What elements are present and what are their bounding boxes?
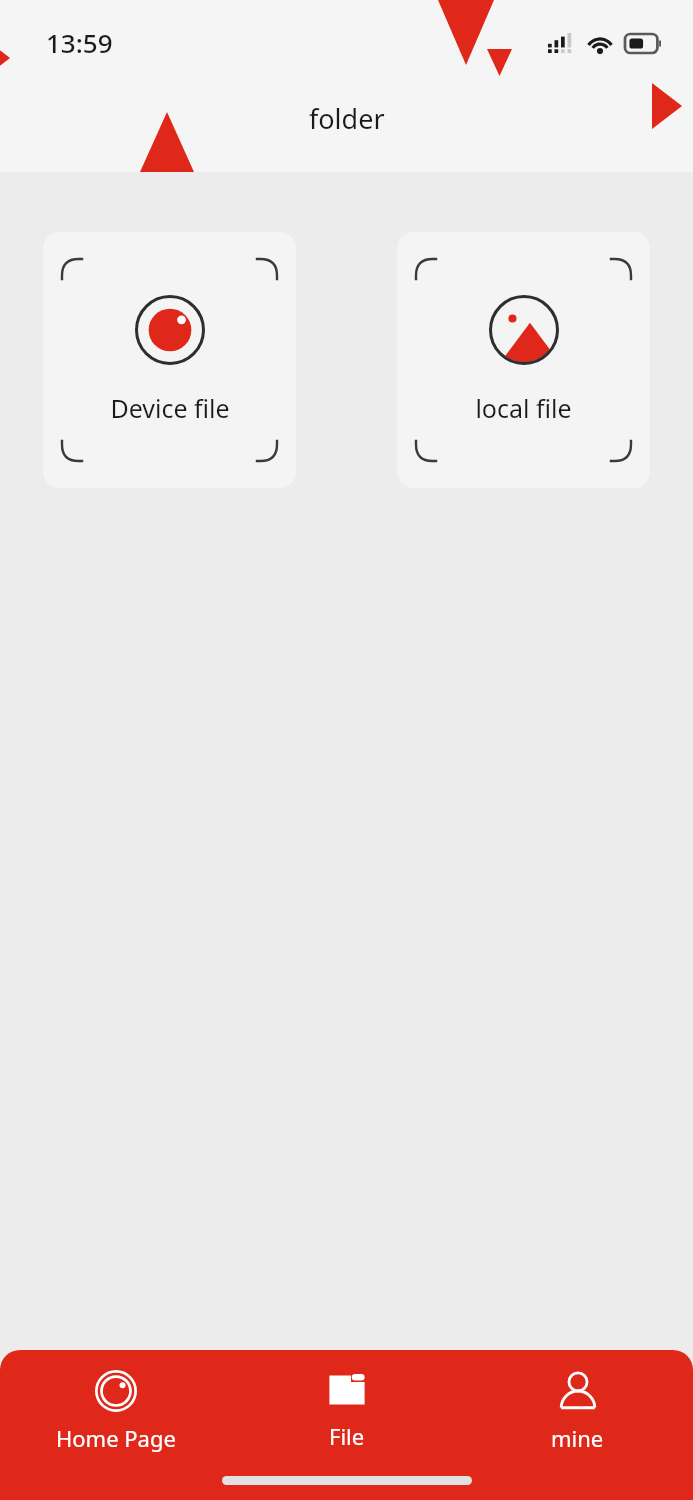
button[interactable]: Home Page: [0, 1364, 231, 1459]
button[interactable]: local file: [397, 232, 650, 488]
staticText: local file: [475, 391, 572, 425]
other: mine: [557, 1370, 599, 1412]
button[interactable]: File: [231, 1364, 462, 1457]
other: File: [327, 1370, 367, 1410]
button[interactable]: mine: [462, 1364, 693, 1459]
staticText: mine: [551, 1423, 604, 1453]
staticText: Home Page: [56, 1423, 176, 1453]
staticText: 13:59: [46, 25, 113, 60]
other: Home Page: [95, 1370, 137, 1412]
staticText: File: [329, 1421, 365, 1451]
staticText: folder: [309, 100, 385, 137]
staticText: Device file: [110, 391, 230, 425]
button[interactable]: Device file: [43, 232, 296, 488]
